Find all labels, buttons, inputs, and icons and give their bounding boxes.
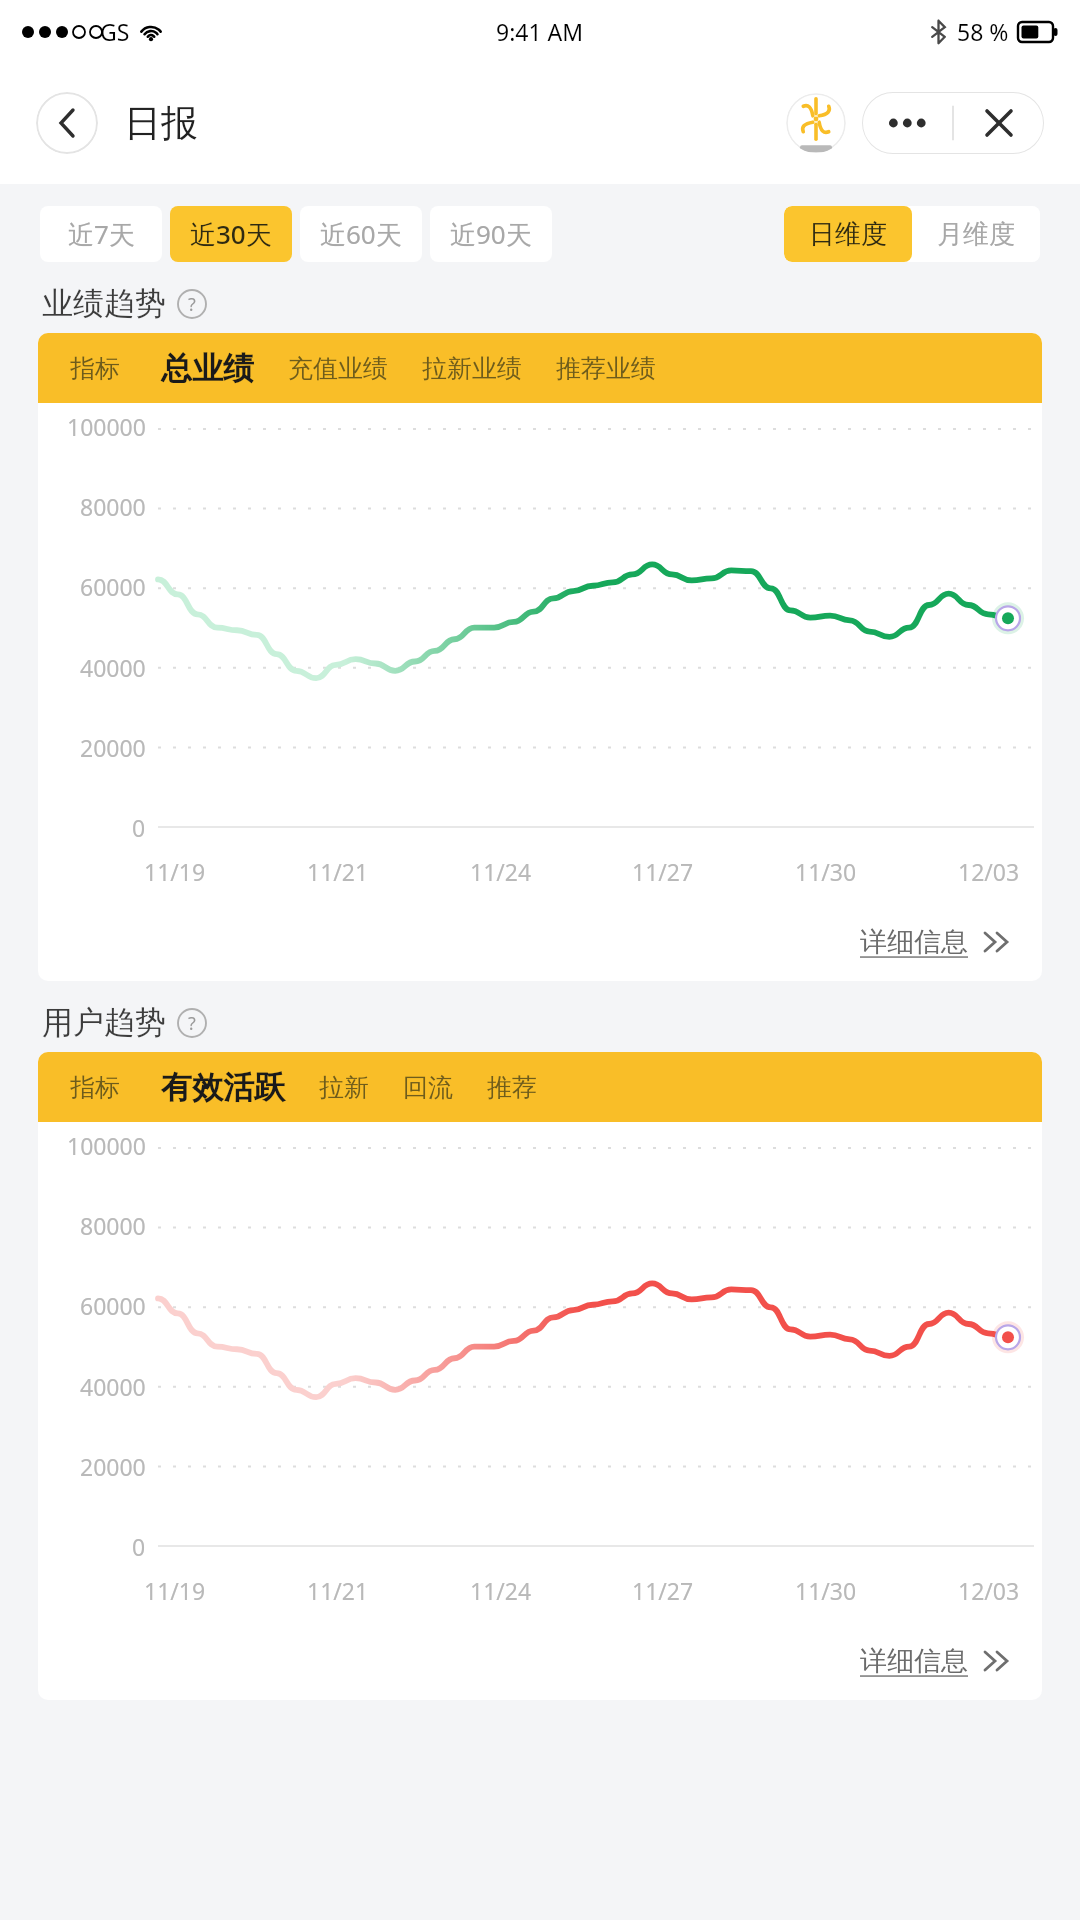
button[interactable]: 近30天 bbox=[170, 206, 292, 262]
staticText: GS bbox=[100, 16, 130, 47]
staticText: 总业绩 bbox=[161, 349, 254, 388]
staticText: ? bbox=[188, 292, 196, 317]
staticText: 指标 bbox=[70, 353, 120, 384]
button[interactable]: 近90天 bbox=[430, 206, 552, 262]
staticText: 100000 bbox=[67, 1130, 146, 1161]
staticText: 11/21 bbox=[307, 1575, 369, 1606]
staticText: 80000 bbox=[80, 491, 146, 522]
staticText: 11/30 bbox=[795, 856, 857, 887]
button[interactable]: Help bbox=[177, 289, 207, 319]
button[interactable]: 指标 bbox=[62, 1052, 128, 1122]
button[interactable]: 日维度 bbox=[784, 206, 912, 262]
staticText: 日报 bbox=[124, 100, 198, 147]
button[interactable]: 回流 bbox=[386, 1052, 470, 1122]
staticText: 业绩趋势 bbox=[42, 284, 166, 323]
staticText: 60000 bbox=[80, 1290, 146, 1321]
button[interactable]: 近7天 bbox=[40, 206, 162, 262]
button[interactable]: 有效活跃 bbox=[144, 1052, 302, 1122]
staticText: 0 bbox=[132, 812, 146, 843]
button[interactable]: 拉新 bbox=[302, 1052, 386, 1122]
staticText: 12/03 bbox=[958, 856, 1020, 887]
button[interactable]: 指标 bbox=[62, 333, 128, 403]
staticText: 用户趋势 bbox=[42, 1003, 166, 1042]
staticText: 9:41 AM bbox=[496, 16, 584, 47]
staticText: 详细信息 bbox=[860, 925, 968, 959]
button[interactable]: 详细信息 bbox=[38, 1622, 1042, 1700]
button[interactable]: 推荐 bbox=[470, 1052, 554, 1122]
staticText: 有效活跃 bbox=[161, 1068, 285, 1107]
staticText: 20000 bbox=[80, 732, 146, 763]
staticText: ? bbox=[188, 1011, 196, 1036]
button[interactable]: Back bbox=[36, 92, 98, 154]
button[interactable]: 推荐业绩 bbox=[539, 333, 673, 403]
staticText: 58 % bbox=[957, 16, 1009, 47]
staticText: 60000 bbox=[80, 571, 146, 602]
staticText: 11/21 bbox=[307, 856, 369, 887]
staticText: 11/30 bbox=[795, 1575, 857, 1606]
staticText: 推荐业绩 bbox=[556, 353, 656, 384]
staticText: 11/19 bbox=[144, 1575, 206, 1606]
staticText: 20000 bbox=[80, 1451, 146, 1482]
staticText: 指标 bbox=[70, 1072, 120, 1103]
button[interactable]: More options bbox=[862, 92, 953, 154]
button[interactable]: 近60天 bbox=[300, 206, 422, 262]
staticText: 80000 bbox=[80, 1210, 146, 1241]
staticText: 月维度 bbox=[937, 218, 1015, 251]
staticText: 0 bbox=[132, 1531, 146, 1562]
staticText: 40000 bbox=[80, 652, 146, 683]
staticText: 11/27 bbox=[632, 856, 694, 887]
staticText: 11/27 bbox=[632, 1575, 694, 1606]
staticText: 100000 bbox=[67, 411, 146, 442]
staticText: 近7天 bbox=[68, 216, 135, 252]
button[interactable]: 详细信息 bbox=[38, 903, 1042, 981]
staticText: 12/03 bbox=[958, 1575, 1020, 1606]
staticText: 推荐 bbox=[487, 1072, 537, 1103]
button[interactable]: Brand logo bbox=[786, 93, 846, 153]
staticText: 11/19 bbox=[144, 856, 206, 887]
button[interactable]: Help bbox=[177, 1008, 207, 1038]
staticText: 详细信息 bbox=[860, 1644, 968, 1678]
staticText: 充值业绩 bbox=[288, 353, 388, 384]
staticText: 近60天 bbox=[320, 216, 402, 252]
staticText: 拉新 bbox=[319, 1072, 369, 1103]
staticText: 日维度 bbox=[809, 218, 887, 251]
staticText: 近30天 bbox=[190, 216, 272, 252]
staticText: 回流 bbox=[403, 1072, 453, 1103]
staticText: 拉新业绩 bbox=[422, 353, 522, 384]
button[interactable]: Close bbox=[953, 92, 1044, 154]
staticText: 近90天 bbox=[450, 216, 532, 252]
button[interactable]: 总业绩 bbox=[144, 333, 271, 403]
button[interactable]: 充值业绩 bbox=[271, 333, 405, 403]
staticText: 11/24 bbox=[470, 1575, 532, 1606]
button[interactable]: 拉新业绩 bbox=[405, 333, 539, 403]
staticText: 11/24 bbox=[470, 856, 532, 887]
staticText: 40000 bbox=[80, 1371, 146, 1402]
button[interactable]: 月维度 bbox=[912, 206, 1040, 262]
